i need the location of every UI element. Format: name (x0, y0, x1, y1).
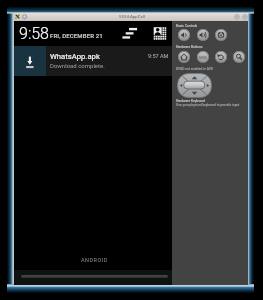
staticText: 9:57 AM (148, 53, 169, 59)
button[interactable]: Minimize (234, 14, 240, 20)
button[interactable]: Back (215, 51, 227, 63)
button[interactable]: Volume up (197, 29, 209, 41)
button[interactable]: Close (242, 14, 248, 20)
staticText: Basic Controls (176, 24, 198, 28)
staticText: MENU (199, 56, 208, 59)
staticText: DPAD not enabled in AVD (176, 67, 213, 71)
button[interactable]: Search (233, 51, 245, 63)
button[interactable]: Power (215, 29, 227, 41)
staticText: Download complete. (50, 62, 105, 69)
staticText: 5554:AppCell (119, 14, 146, 19)
button[interactable]: Directional pad (177, 73, 212, 98)
staticText: 9:58 (19, 24, 49, 43)
staticText: Hardware Buttons (176, 45, 203, 49)
staticText: Hardware Keyboard (176, 99, 205, 103)
staticText: ANDROID (81, 257, 108, 263)
button[interactable]: Volume down (178, 29, 190, 41)
button[interactable]: Home (178, 51, 190, 63)
staticText: Use your physical keyboard to provide in… (176, 103, 240, 107)
staticText: FRI, DECEMBER 21 (50, 32, 103, 39)
staticText: WhatsApp.apk (50, 52, 100, 61)
button[interactable]: Menu (197, 51, 209, 63)
button[interactable]: WhatsApp.apk (14, 46, 172, 76)
